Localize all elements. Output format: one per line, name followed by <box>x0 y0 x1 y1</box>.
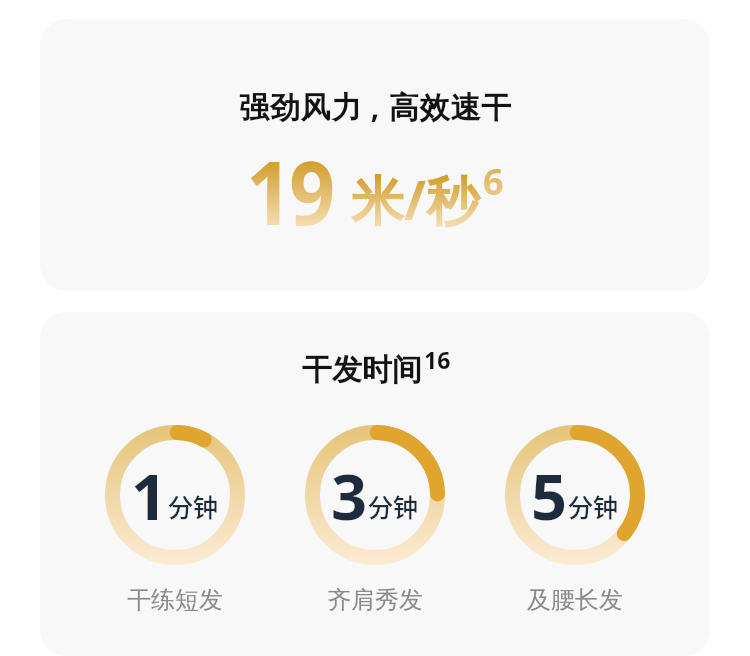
staticText: 3 <box>331 453 368 539</box>
button[interactable]: 干发时间 <box>40 312 710 656</box>
staticText: 16 <box>424 344 451 375</box>
staticText: 强劲风力 , 高效速干 <box>239 86 512 127</box>
staticText: 米/秒 <box>351 163 479 235</box>
staticText: 分钟 <box>368 488 419 524</box>
staticText: 干发时间 <box>302 351 422 389</box>
button[interactable]: 强劲风力 , 高效速干 <box>40 19 710 291</box>
staticText: 齐肩秀发 <box>327 585 423 615</box>
staticText: 及腰长发 <box>527 585 623 615</box>
staticText: 5 <box>531 453 568 539</box>
staticText: 19 <box>246 131 333 251</box>
staticText: 分钟 <box>568 488 619 524</box>
staticText: 6 <box>483 157 504 206</box>
staticText: 干练短发 <box>127 585 223 615</box>
staticText: 1 <box>131 453 168 539</box>
staticText: 分钟 <box>168 488 219 524</box>
